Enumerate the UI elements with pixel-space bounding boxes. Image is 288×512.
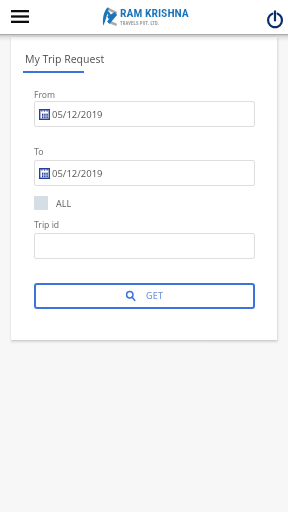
button[interactable]: Logout <box>262 6 288 32</box>
staticText: My Trip Request <box>25 52 105 66</box>
staticText: To <box>34 146 44 158</box>
staticText: GET <box>146 290 164 302</box>
button[interactable]: 05/12/2019 <box>34 160 255 186</box>
button[interactable]: My Trip Request <box>25 52 105 66</box>
button[interactable]: 05/12/2019 <box>34 101 255 127</box>
button[interactable]: GET <box>34 283 255 309</box>
staticText: RAM KRISHNA <box>120 6 189 20</box>
staticText: TRAVELS PVT. LTD. <box>120 21 160 26</box>
staticText: 05/12/2019 <box>52 108 103 121</box>
staticText: Trip id <box>34 219 60 231</box>
button[interactable]: Menu <box>4 4 35 29</box>
button[interactable]: ALL <box>34 196 72 210</box>
staticText: From <box>34 89 56 101</box>
staticText: ALL <box>56 197 72 209</box>
staticText: 05/12/2019 <box>52 167 103 180</box>
button[interactable] <box>34 233 255 259</box>
